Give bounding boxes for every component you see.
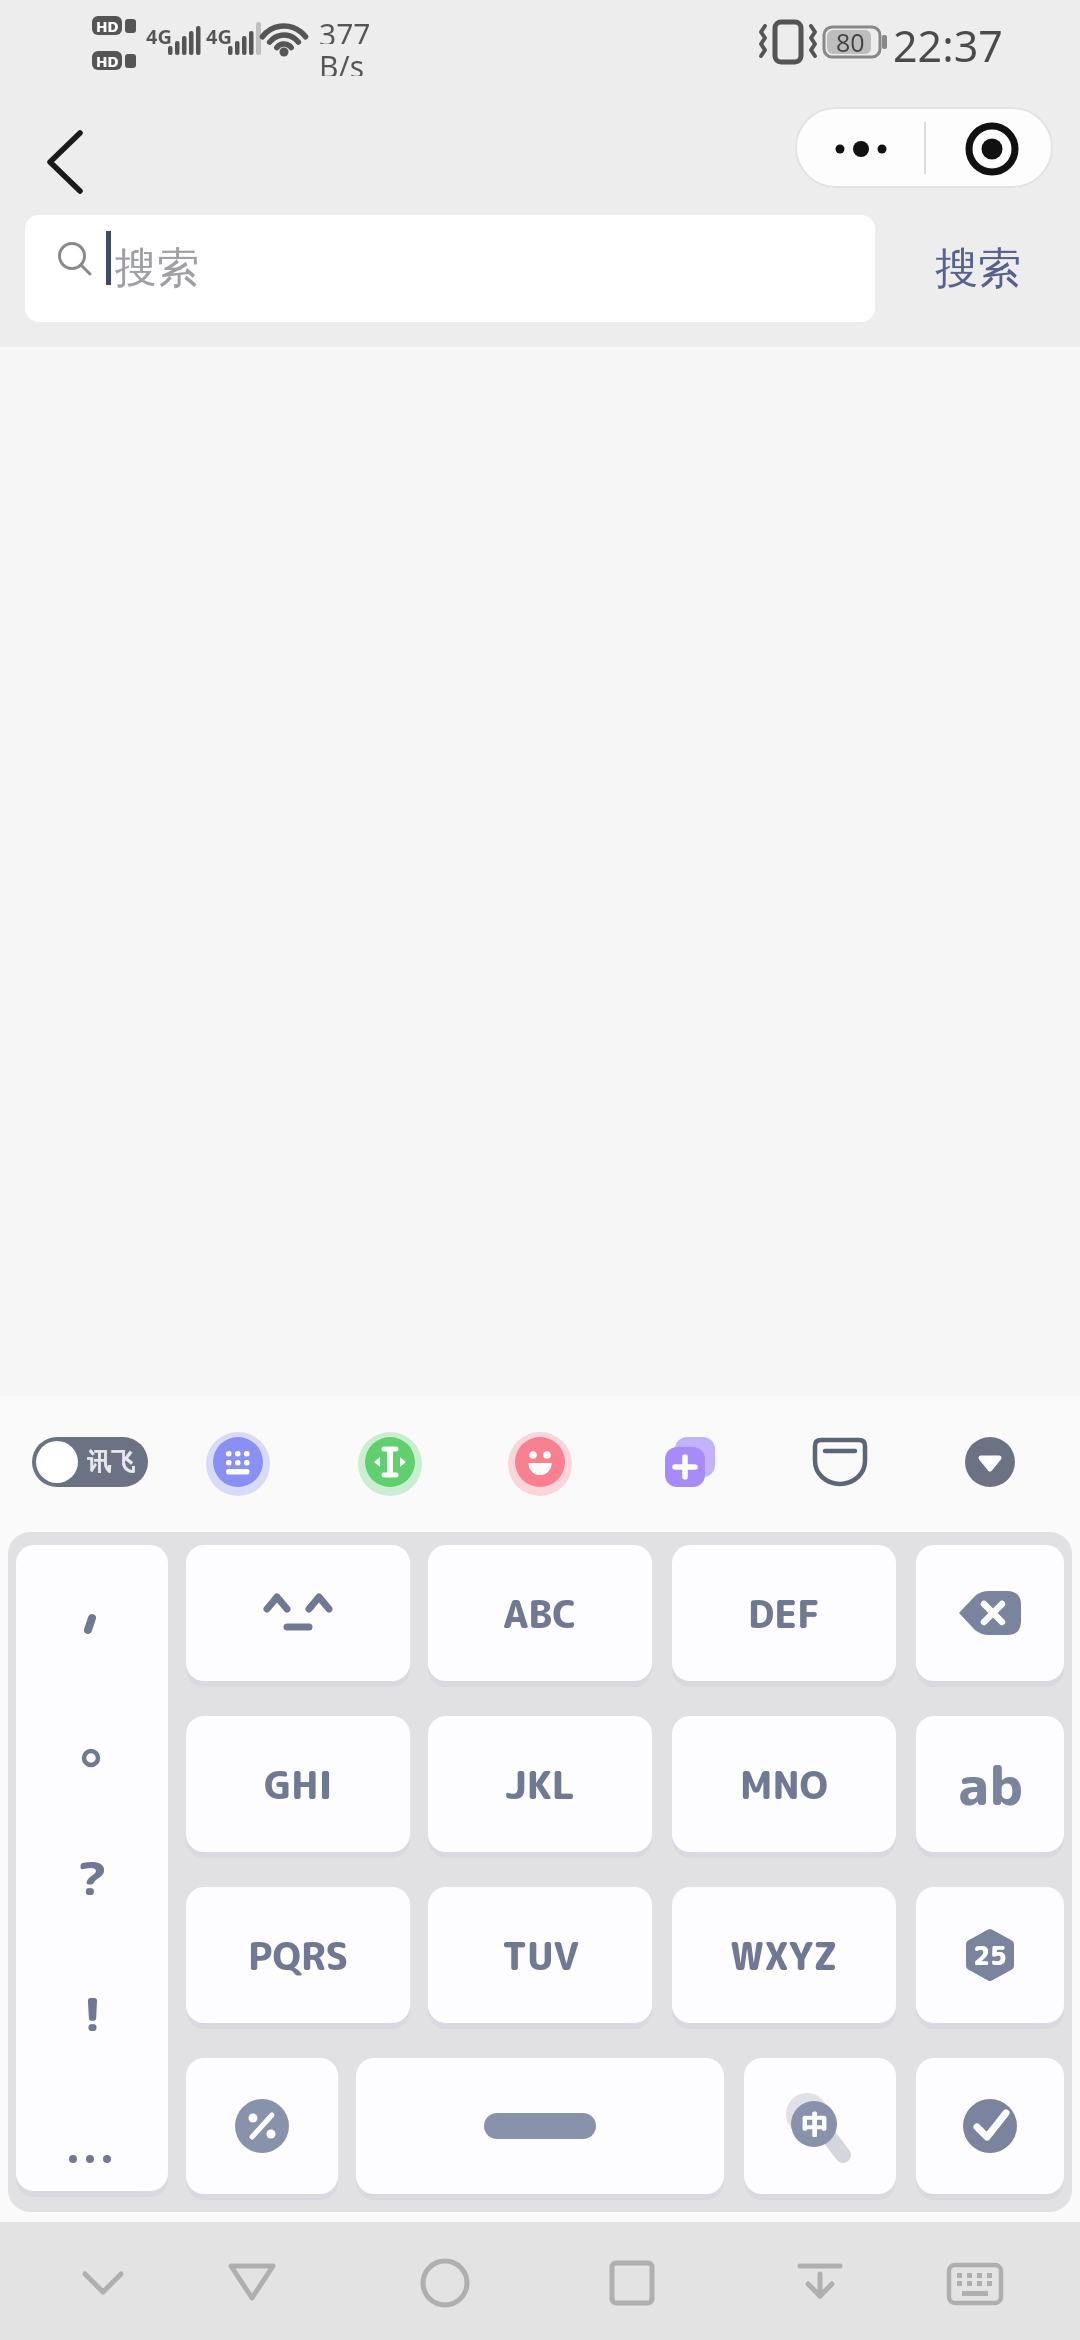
staticText: PQRS — [248, 1929, 349, 1982]
staticText: 搜索 — [935, 242, 1021, 296]
staticText: 搜索 — [115, 242, 199, 295]
button[interactable] — [795, 107, 1053, 188]
button[interactable] — [916, 1545, 1064, 1681]
button[interactable] — [213, 1437, 263, 1487]
button[interactable]: 搜索 — [905, 215, 1050, 322]
staticText: GHI — [264, 1758, 333, 1811]
staticText: 中 — [801, 2105, 828, 2143]
staticText: ABC — [503, 1587, 577, 1640]
button[interactable]: 讯飞 — [32, 1437, 148, 1487]
button[interactable] — [16, 1545, 168, 2191]
button[interactable]: GHI — [186, 1716, 410, 1852]
button[interactable] — [665, 1437, 715, 1487]
staticText: JKL — [505, 1758, 575, 1811]
button[interactable] — [356, 2058, 724, 2194]
button[interactable]: DEF — [672, 1545, 896, 1681]
staticText: 80 — [836, 25, 865, 59]
staticText: 4G — [146, 23, 172, 45]
button[interactable] — [515, 1437, 565, 1487]
staticText: MNO — [740, 1758, 828, 1811]
button[interactable] — [813, 1438, 867, 1486]
button[interactable]: PQRS — [186, 1887, 410, 2023]
button[interactable] — [916, 2058, 1064, 2194]
button[interactable]: ab — [916, 1716, 1064, 1852]
staticText: 22:37 — [893, 16, 1003, 66]
staticText: 377 — [319, 14, 371, 44]
staticText: 4G — [206, 23, 232, 45]
button[interactable]: 搜索 — [25, 215, 875, 322]
staticText: HD — [96, 51, 119, 71]
staticText: HD — [96, 16, 119, 36]
button[interactable]: WXYZ — [672, 1887, 896, 2023]
button[interactable]: MNO — [672, 1716, 896, 1852]
button[interactable]: JKL — [428, 1716, 652, 1852]
button[interactable] — [186, 1545, 410, 1681]
button[interactable]: ABC — [428, 1545, 652, 1681]
button[interactable]: 中 — [744, 2058, 896, 2194]
staticText: 讯飞 — [87, 1447, 135, 1477]
staticText: ! — [83, 1982, 102, 2042]
button[interactable]: TUV — [428, 1887, 652, 2023]
staticText: ? — [77, 1846, 107, 1906]
staticText: 25 — [973, 1937, 1007, 1973]
button[interactable]: 25 — [916, 1887, 1064, 2023]
staticText: WXYZ — [730, 1929, 838, 1982]
staticText: TUV — [502, 1929, 579, 1982]
staticText: ab — [958, 1747, 1023, 1822]
staticText: DEF — [748, 1587, 820, 1640]
button[interactable] — [30, 125, 100, 199]
button[interactable] — [965, 1437, 1015, 1487]
staticText: B/s — [319, 46, 365, 76]
button[interactable] — [365, 1437, 415, 1487]
button[interactable] — [186, 2058, 338, 2194]
